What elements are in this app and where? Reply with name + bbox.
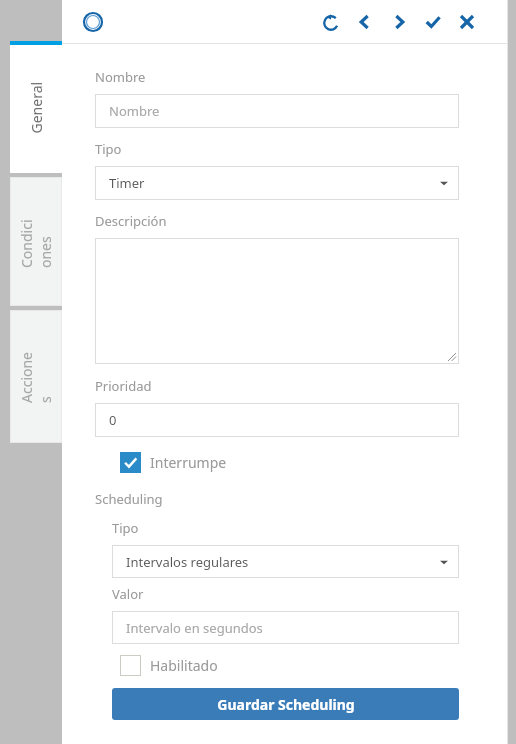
button[interactable]: Guardar Scheduling [112,688,459,720]
staticText: Condiciones [17,216,55,268]
staticText: Tipo [112,519,139,537]
staticText: Nombre [95,68,146,86]
button[interactable]: Condiciones [10,177,62,306]
button[interactable]: Cerrar [453,8,481,36]
staticText: Intervalos regulares [126,553,249,571]
button[interactable]: General [10,41,62,173]
staticText: Nombre [109,102,160,120]
button[interactable]: Estado [80,9,106,35]
staticText: 0 [109,411,117,429]
button[interactable]: Intervalo en segundos [112,611,459,644]
staticText: General [26,81,45,133]
button[interactable]: Interrumpe [120,452,227,473]
staticText: Scheduling [95,490,163,508]
button[interactable]: 0 [95,403,459,437]
staticText: Valor [112,585,144,603]
staticText: Timer [109,174,145,192]
button[interactable]: Acciones [10,310,62,443]
staticText: Acciones [17,351,55,403]
staticText: Interrumpe [150,453,227,472]
staticText: Habilitado [150,656,218,675]
button[interactable]: Aceptar [419,8,447,36]
button[interactable]: Anterior [351,8,379,36]
button[interactable]: Deshacer [317,8,345,36]
button[interactable]: Timer [95,166,459,200]
staticText: Guardar Scheduling [217,695,355,714]
button[interactable] [95,238,459,364]
button[interactable]: Siguiente [385,8,413,36]
button[interactable]: Intervalos regulares [112,545,459,578]
staticText: Intervalo en segundos [126,619,263,637]
button[interactable]: Habilitado [120,655,218,676]
staticText: Prioridad [95,377,152,395]
button[interactable]: Nombre [95,94,459,128]
staticText: Tipo [95,140,122,158]
staticText: Descripción [95,212,167,230]
